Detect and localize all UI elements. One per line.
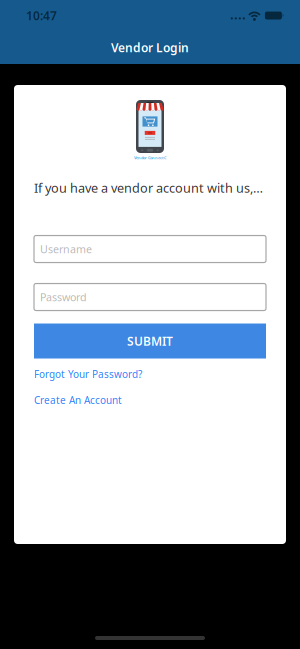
staticText: Username xyxy=(40,242,92,256)
button[interactable]: SUBMIT xyxy=(34,323,266,358)
staticText: 10:47 xyxy=(26,7,57,24)
button[interactable]: Forgot Your Password? xyxy=(34,367,266,380)
staticText: SUBMIT xyxy=(127,333,173,349)
staticText: If you have a vendor account with us,… xyxy=(34,179,263,197)
staticText: Forgot Your Password? xyxy=(34,367,142,381)
staticText: Password xyxy=(40,290,87,304)
staticText: Create An Account xyxy=(34,393,122,407)
staticText: Vendor Login xyxy=(111,39,189,56)
button[interactable]: Create An Account xyxy=(34,393,266,406)
staticText: Vendor ConnectC xyxy=(134,155,166,160)
